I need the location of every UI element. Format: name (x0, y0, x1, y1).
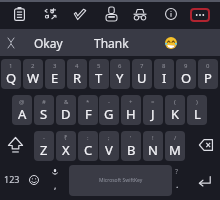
button[interactable]: , (47, 165, 63, 196)
staticText: D (61, 105, 71, 123)
button[interactable]: + (121, 95, 141, 125)
staticText: 9 (184, 62, 188, 70)
staticText: A (18, 105, 27, 123)
button[interactable]: Okay (22, 29, 74, 56)
button[interactable]: 4 (67, 59, 87, 89)
staticText: ) (196, 98, 198, 106)
staticText: V (105, 141, 113, 159)
button[interactable]: @ (12, 95, 32, 125)
staticText: H (126, 105, 136, 123)
staticText: 3 (53, 62, 57, 70)
button[interactable]: 0 (198, 59, 218, 89)
button[interactable]: ! (143, 131, 163, 161)
button[interactable]: Tasks (67, 1, 93, 27)
staticText: ' (130, 134, 132, 142)
staticText: + (129, 98, 133, 106)
button[interactable]: Emoji (22, 165, 46, 195)
staticText: 2 (31, 62, 35, 70)
staticText: @ (19, 98, 25, 106)
staticText: M (169, 141, 181, 159)
staticText: / (174, 134, 177, 142)
staticText: L (194, 105, 201, 123)
button[interactable]: Microsoft SwiftKey (69, 165, 172, 196)
staticText: : (87, 134, 89, 142)
button[interactable]: ' (121, 131, 141, 161)
button[interactable]: / (165, 131, 185, 161)
staticText: Okay (34, 35, 63, 51)
staticText: E (51, 69, 59, 87)
button[interactable]: 123 (0, 164, 24, 194)
staticText: 1 (9, 62, 13, 70)
button[interactable]: # (34, 95, 54, 125)
button[interactable]: 3 (45, 59, 65, 89)
button[interactable]: ? (169, 165, 185, 196)
button[interactable]: 8 (154, 59, 174, 89)
staticText: N (148, 141, 158, 159)
staticText: P (204, 69, 212, 87)
staticText: 0 (206, 62, 210, 70)
staticText: O (181, 69, 192, 87)
staticText: . (176, 178, 179, 190)
staticText: ? (175, 167, 179, 177)
staticText: F (85, 105, 92, 123)
button[interactable]: Thank (85, 29, 138, 56)
staticText: 5 (97, 62, 101, 70)
staticText: J (151, 105, 155, 123)
button[interactable]: Translate (37, 1, 63, 27)
button[interactable]: Shift (0, 130, 32, 160)
staticText: C (84, 141, 93, 159)
staticText: Thank (94, 35, 129, 51)
staticText: W (27, 69, 40, 87)
button[interactable]: ₹ (56, 131, 76, 161)
button[interactable]: Laughing emoji (158, 29, 184, 56)
button[interactable]: : (78, 131, 98, 161)
staticText: Q (6, 69, 17, 87)
button[interactable]: ) (187, 95, 207, 125)
staticText: X (62, 141, 70, 159)
button[interactable]: * (78, 95, 98, 125)
button[interactable]: 2 (23, 59, 43, 89)
button[interactable]: - (99, 95, 119, 125)
button[interactable]: 7 (132, 59, 152, 89)
staticText: 6 (118, 62, 122, 70)
button[interactable]: 9 (176, 59, 196, 89)
staticText: - (43, 134, 45, 142)
staticText: Z (40, 141, 48, 159)
button[interactable]: ; (99, 131, 119, 161)
staticText: B (127, 141, 136, 159)
staticText: & (64, 98, 69, 106)
button[interactable]: Enter (188, 166, 220, 196)
staticText: R (73, 69, 82, 87)
button[interactable]: 5 (89, 59, 109, 89)
staticText: , (54, 179, 57, 191)
button[interactable]: More options (190, 8, 210, 22)
staticText: K (171, 105, 180, 123)
staticText: Microsoft SwiftKey (99, 177, 143, 184)
staticText: Y (116, 69, 124, 87)
staticText: 7 (140, 62, 144, 70)
staticText: # (42, 98, 46, 106)
button[interactable]: Incognito mode (127, 1, 153, 27)
staticText: U (137, 69, 147, 87)
staticText: 8 (162, 62, 166, 70)
staticText: G (104, 105, 114, 123)
staticText: 123 (4, 173, 20, 185)
staticText: T (95, 69, 103, 87)
staticText: I (162, 69, 167, 87)
staticText: ; (108, 134, 110, 142)
button[interactable]: 6 (110, 59, 130, 89)
staticText: ( (174, 98, 176, 106)
button[interactable]: Close suggestions (2, 29, 20, 56)
staticText: S (40, 105, 48, 123)
button[interactable]: 1 (1, 59, 21, 89)
button[interactable]: Profile (98, 1, 124, 27)
button[interactable]: - (34, 131, 54, 161)
button[interactable]: & (56, 95, 76, 125)
staticText: ₹ (64, 134, 68, 142)
button[interactable]: = (143, 95, 163, 125)
button[interactable]: Clipboard (6, 1, 32, 27)
staticText: - (108, 98, 110, 106)
button[interactable]: Backspace (189, 130, 220, 160)
button[interactable]: ( (165, 95, 185, 125)
button[interactable]: Info (158, 1, 184, 27)
